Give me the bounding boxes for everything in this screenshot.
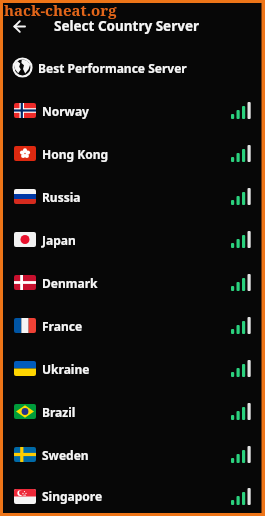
button[interactable]: France (0, 304, 265, 347)
staticText: Japan (42, 232, 76, 248)
staticText: Sweden (42, 447, 89, 463)
staticText: Hong Kong (42, 146, 109, 162)
button[interactable]: Singapore (0, 476, 265, 516)
button[interactable]: Brazil (0, 390, 265, 433)
button[interactable]: Hong Kong (0, 132, 265, 175)
staticText: Select Country Server (54, 17, 200, 35)
button[interactable]: Norway (0, 89, 265, 132)
button[interactable]: Ukraine (0, 347, 265, 390)
staticText: Singapore (42, 488, 103, 504)
button[interactable]: Japan (0, 218, 265, 261)
staticText: France (42, 318, 83, 334)
staticText: hack-cheat.org (4, 0, 117, 20)
button[interactable]: Denmark (0, 261, 265, 304)
button[interactable]: Best Performance Server (0, 46, 265, 89)
staticText: Best Performance Server (38, 60, 187, 76)
staticText: Brazil (42, 404, 76, 420)
button[interactable] (11, 18, 27, 34)
staticText: Denmark (42, 275, 98, 291)
button[interactable]: Sweden (0, 433, 265, 476)
button[interactable]: Russia (0, 175, 265, 218)
staticText: Norway (42, 103, 89, 119)
staticText: Russia (42, 189, 81, 205)
staticText: Ukraine (42, 361, 90, 377)
